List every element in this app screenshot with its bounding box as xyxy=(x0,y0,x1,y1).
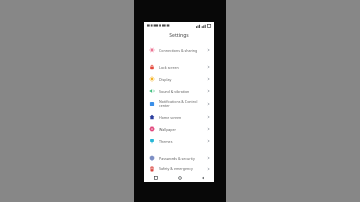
staticText: Wallpaper xyxy=(159,127,207,132)
button[interactable]: Back xyxy=(191,173,214,182)
staticText: Home screen xyxy=(159,115,207,120)
button[interactable]: Lock screen xyxy=(144,61,214,73)
button[interactable]: Wallpaper xyxy=(144,123,214,135)
button[interactable]: Recents xyxy=(144,173,168,182)
staticText: Lock screen xyxy=(159,65,207,70)
button[interactable]: Themes xyxy=(144,135,214,147)
button[interactable]: Connections & sharing xyxy=(144,44,214,56)
staticText: Themes xyxy=(159,139,207,144)
staticText: Display xyxy=(159,77,207,82)
staticText: Safety & emergency xyxy=(159,166,207,171)
button[interactable]: Home screen xyxy=(144,111,214,123)
button[interactable]: Sound & vibration xyxy=(144,85,214,97)
button[interactable]: Safety & emergency xyxy=(144,164,214,173)
button[interactable]: Notifications & Control center xyxy=(144,97,214,111)
staticText: Settings xyxy=(169,32,189,39)
staticText: Connections & sharing xyxy=(159,48,207,53)
button[interactable]: Home xyxy=(168,173,191,182)
button[interactable]: Display xyxy=(144,73,214,85)
staticText: Passwords & security xyxy=(159,156,207,161)
button[interactable]: Passwords & security xyxy=(144,152,214,164)
staticText: Sound & vibration xyxy=(159,89,207,94)
staticText: Notifications & Control center xyxy=(159,99,207,109)
